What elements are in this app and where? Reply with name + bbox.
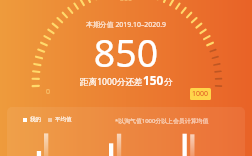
staticText: 我的 (30, 116, 41, 123)
staticText: 850 (0, 27, 252, 78)
staticText: 距离1000分还差 (80, 76, 143, 88)
button[interactable] (7, 107, 245, 156)
staticText: 1000 (192, 89, 209, 99)
staticText: 150 (143, 72, 164, 88)
staticText: 500 (118, 0, 134, 4)
staticText: 0 (46, 87, 51, 97)
staticText: 本期分值 2019.10–2020.9 (0, 20, 252, 29)
staticText: 平均值 (55, 116, 72, 123)
staticText: 分 (164, 77, 173, 88)
staticText: *以淘气值1000分以上会员计算均值 (115, 117, 209, 125)
